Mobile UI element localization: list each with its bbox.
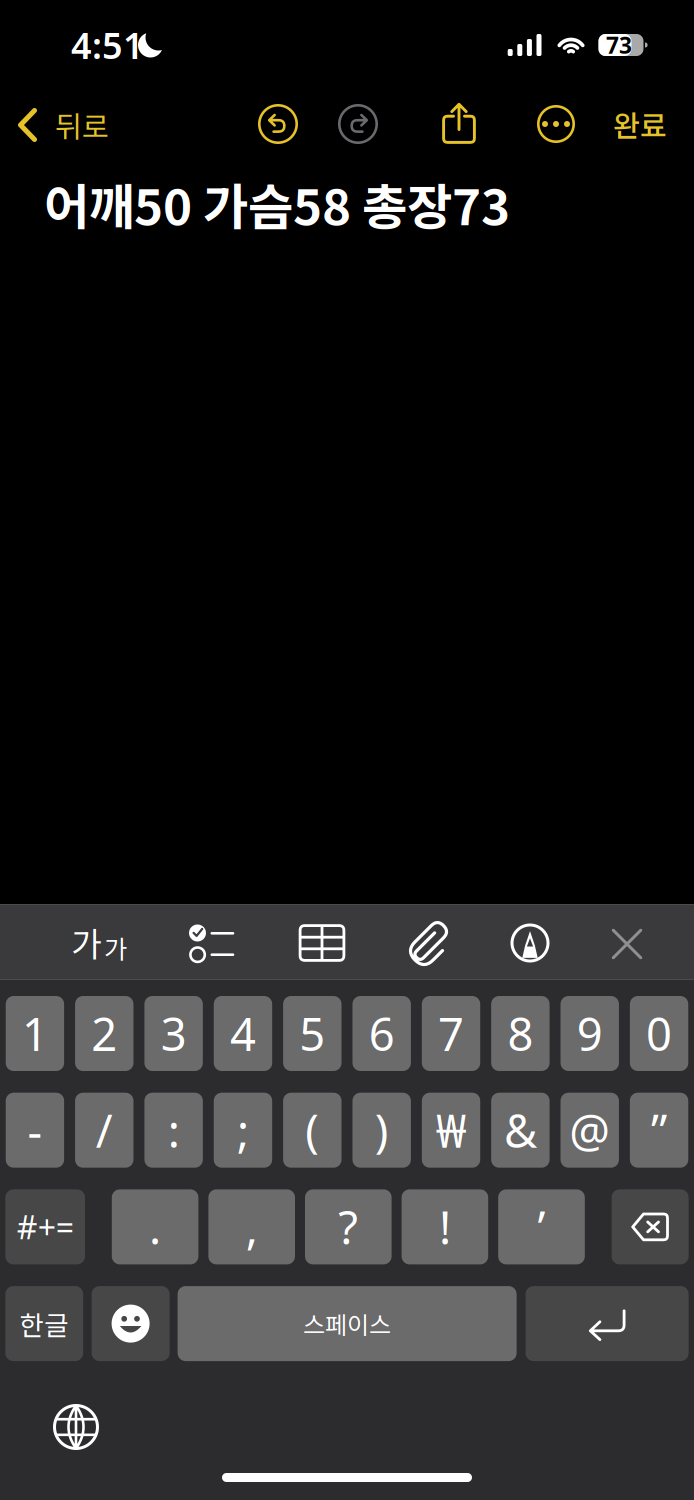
button[interactable]: Next keyboard (45, 1398, 107, 1456)
button[interactable]: Share (442, 102, 476, 144)
staticText: ; (237, 1100, 249, 1160)
button[interactable]: #+= (5, 1189, 85, 1264)
staticText: 1 (22, 1003, 48, 1064)
button[interactable]: ( (283, 1093, 341, 1168)
staticText: ( (305, 1100, 319, 1160)
button[interactable]: ’ (498, 1189, 585, 1264)
staticText: : (168, 1100, 180, 1160)
button[interactable]: 한글 (5, 1286, 83, 1361)
staticText: ” (651, 1100, 667, 1160)
staticText: & (504, 1100, 537, 1160)
button[interactable]: Format (60, 904, 138, 980)
staticText: ? (338, 1197, 358, 1257)
button[interactable]: Close keyboard (589, 906, 665, 982)
button[interactable]: ) (352, 1093, 411, 1168)
button[interactable]: & (491, 1093, 550, 1168)
button[interactable]: Redo (337, 103, 379, 145)
button[interactable]: ₩ (422, 1093, 480, 1168)
button[interactable]: Markup (492, 905, 568, 981)
button[interactable]: , (208, 1189, 295, 1264)
staticText: 가 (71, 918, 102, 966)
button[interactable]: ; (214, 1093, 272, 1168)
staticText: 스페이스 (303, 1306, 391, 1341)
button[interactable]: More (536, 104, 576, 144)
staticText: 뒤로 (55, 104, 109, 146)
button[interactable]: Undo (257, 103, 299, 145)
staticText: ₩ (436, 1100, 466, 1160)
button[interactable]: 0 (630, 996, 688, 1071)
button[interactable]: ! (402, 1189, 488, 1264)
staticText: 한글 (19, 1304, 69, 1343)
button[interactable]: 7 (422, 996, 480, 1071)
staticText: 5 (299, 1003, 325, 1064)
staticText: - (27, 1100, 42, 1160)
staticText: 73 (606, 30, 632, 60)
staticText: 2 (91, 1003, 117, 1064)
staticText: 7 (438, 1003, 464, 1064)
staticText: 6 (369, 1003, 395, 1064)
staticText: 가 (104, 929, 127, 966)
button[interactable]: 1 (6, 996, 64, 1071)
staticText: @ (569, 1100, 610, 1160)
button[interactable]: - (6, 1093, 64, 1168)
button[interactable]: @ (560, 1093, 619, 1168)
button[interactable]: 5 (283, 996, 341, 1071)
button[interactable]: 완료 (599, 94, 681, 154)
staticText: ) (375, 1100, 389, 1160)
staticText: 8 (507, 1003, 533, 1064)
staticText: 어깨50 가슴58 총장73 (44, 168, 510, 239)
button[interactable]: 스페이스 (178, 1286, 517, 1361)
button[interactable]: Delete (612, 1189, 689, 1264)
button[interactable]: 4 (214, 996, 272, 1071)
button[interactable]: / (75, 1093, 133, 1168)
staticText: / (96, 1100, 113, 1160)
button[interactable]: ” (630, 1093, 688, 1168)
staticText: 4 (230, 1003, 256, 1064)
staticText: 3 (161, 1003, 187, 1064)
button[interactable]: Emoji (92, 1286, 170, 1361)
button[interactable]: 뒤로 (5, 95, 121, 155)
button[interactable]: ? (305, 1189, 392, 1264)
button[interactable]: 3 (144, 996, 203, 1071)
staticText: 4:51 (71, 21, 144, 69)
staticText: 완료 (613, 103, 667, 145)
button[interactable]: . (112, 1189, 198, 1264)
button[interactable]: : (144, 1093, 203, 1168)
button[interactable]: Return (526, 1286, 689, 1361)
staticText: #+= (17, 1206, 74, 1248)
staticText: . (149, 1197, 161, 1257)
button[interactable]: 8 (491, 996, 550, 1071)
button[interactable]: Table (284, 905, 360, 981)
button[interactable]: 6 (352, 996, 411, 1071)
staticText: ! (439, 1197, 451, 1257)
staticText: , (246, 1197, 258, 1257)
staticText: 0 (646, 1003, 672, 1064)
staticText: ’ (537, 1197, 545, 1257)
button[interactable]: 2 (75, 996, 133, 1071)
button[interactable]: 9 (560, 996, 619, 1071)
button[interactable]: Checklist (174, 906, 250, 982)
staticText: 9 (577, 1003, 603, 1064)
button[interactable]: Attach (390, 905, 466, 981)
